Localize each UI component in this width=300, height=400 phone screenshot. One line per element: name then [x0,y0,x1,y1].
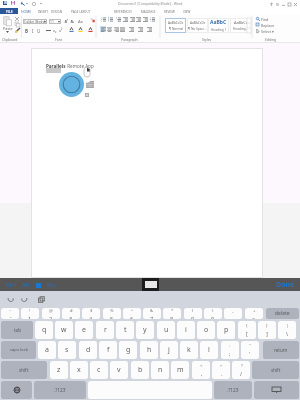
button[interactable]: g [119,341,137,359]
button[interactable]: Window control [268,1,274,7]
button[interactable]: AaBbCcDc [187,18,208,33]
button[interactable]: Window control [280,1,286,7]
button[interactable]: Ctrl [6,281,16,289]
button[interactable]: & [143,308,161,319]
button[interactable]: i [177,321,195,339]
button[interactable]: FILE [0,8,18,14]
button[interactable]: .?123 [214,381,252,399]
button[interactable]: d [79,341,97,359]
button[interactable]: tab [1,321,33,339]
button[interactable]: s [58,341,76,359]
button[interactable]: } [258,321,276,339]
button[interactable]: AaBbCcDc [165,18,186,33]
button[interactable]: a [38,341,56,359]
button[interactable]: w [55,321,73,339]
button[interactable]: PAGE LAYOUT [70,8,92,15]
button[interactable]: AaBbC [208,18,229,33]
button[interactable]: caps lock [1,341,36,359]
staticText: W [4,1,7,5]
button[interactable]: # [62,308,80,319]
button[interactable]: HOME [18,8,35,15]
button[interactable]: e [75,321,93,339]
button[interactable]: 11 [49,19,61,24]
button[interactable]: + [245,308,263,319]
button[interactable]: v [110,361,128,379]
button[interactable]: Window control [286,1,292,7]
button[interactable]: k [180,341,198,359]
button[interactable]: Calibri (Body) [23,19,47,24]
button[interactable]: VIEW [181,8,193,15]
button[interactable]: ( [184,308,202,319]
button[interactable]: Repeat [32,2,36,6]
button[interactable]: More [85,93,89,97]
button[interactable]: | [278,321,296,339]
button[interactable]: $ [82,308,100,319]
button[interactable]: t [116,321,134,339]
button[interactable]: Undo [6,295,15,304]
button[interactable]: > [212,361,230,379]
button[interactable]: Show keyboard [142,278,159,291]
button[interactable]: z [50,361,68,379]
button[interactable]: ^ [123,308,141,319]
button[interactable]: : [221,341,239,359]
button[interactable]: shift [1,361,47,379]
button[interactable]: % [103,308,121,319]
button[interactable]: b [131,361,149,379]
button[interactable]: ~ [1,308,19,319]
button[interactable]: y [136,321,154,339]
button[interactable]: j [160,341,178,359]
button[interactable]: shift [252,361,299,379]
button[interactable]: ? [232,361,250,379]
button[interactable]: Esc [47,281,57,289]
button[interactable]: n [151,361,169,379]
button[interactable]: Word [3,1,7,5]
staticText: s [65,345,69,355]
button[interactable]: Window control [292,1,298,7]
button[interactable]: * [163,308,181,319]
button[interactable]: Key [1,381,32,399]
button[interactable]: Undo [20,1,25,6]
button[interactable]: Done [276,280,295,290]
button[interactable]: Redo [20,295,29,304]
button[interactable]: .?123 [34,381,86,399]
button[interactable]: r [96,321,114,339]
button[interactable]: Keyboard mode [86,81,94,88]
button[interactable]: MAILINGS [139,8,157,15]
button[interactable]: delete [266,308,299,319]
button[interactable]: ) [204,308,222,319]
button[interactable]: h [140,341,158,359]
button[interactable]: REVIEW [162,8,177,15]
staticText: t [124,325,127,335]
button[interactable]: Key [254,381,299,399]
staticText: : [229,343,231,349]
button[interactable]: ! [21,308,39,319]
staticText: h [147,345,152,355]
button[interactable]: q [35,321,53,339]
button[interactable]: @ [42,308,60,319]
button[interactable]: Save [11,1,15,5]
button[interactable]: c [90,361,108,379]
button[interactable]: m [171,361,189,379]
button[interactable]: Copy [37,295,46,304]
button[interactable]: f [99,341,117,359]
button[interactable]: Mouse mode [84,67,90,77]
button[interactable]: AaBbCcl [230,18,251,33]
button[interactable]: " [241,341,259,359]
button[interactable]: < [192,361,210,379]
button[interactable]: REFERENCES [112,8,134,15]
button[interactable]: l [200,341,218,359]
button[interactable]: p [217,321,235,339]
button[interactable]: INSERT [37,8,49,15]
button[interactable]: u [157,321,175,339]
button[interactable]: return [263,341,299,359]
button[interactable]: Alt [22,281,30,289]
button[interactable]: o [197,321,215,339]
button[interactable]: _ [224,308,242,319]
button[interactable]: { [238,321,256,339]
button[interactable]: DESIGN [50,8,62,15]
button[interactable]: x [70,361,88,379]
button[interactable]: Window control [274,1,280,7]
staticText: DESIGN [51,10,62,14]
